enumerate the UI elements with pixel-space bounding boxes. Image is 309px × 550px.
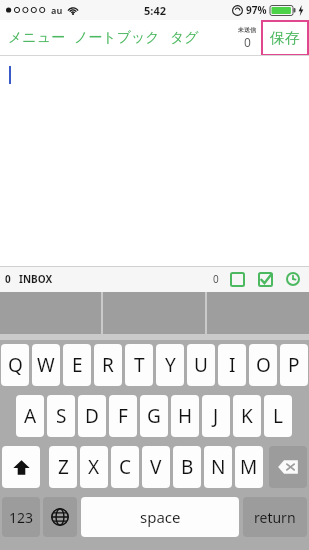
staticText: D bbox=[85, 403, 99, 429]
staticText: H bbox=[178, 403, 193, 429]
staticText: M bbox=[240, 454, 258, 480]
staticText: 0 bbox=[244, 34, 251, 50]
staticText: B bbox=[181, 454, 194, 480]
staticText: space bbox=[140, 507, 181, 527]
button[interactable]: メニュー bbox=[0, 20, 69, 56]
button[interactable]: M bbox=[235, 446, 263, 488]
staticText: I bbox=[229, 352, 236, 378]
staticText: S bbox=[56, 403, 67, 429]
button[interactable]: 未送信 bbox=[235, 26, 259, 50]
button[interactable]: L bbox=[264, 395, 292, 437]
button[interactable]: A bbox=[16, 395, 44, 437]
button[interactable]: K bbox=[233, 395, 261, 437]
staticText: W bbox=[37, 352, 55, 378]
button[interactable]: space bbox=[81, 497, 239, 537]
button[interactable]: J bbox=[202, 395, 230, 437]
button[interactable]: X bbox=[80, 446, 108, 488]
button[interactable]: S bbox=[47, 395, 75, 437]
button[interactable]: I bbox=[218, 344, 246, 386]
button[interactable]: H bbox=[171, 395, 199, 437]
staticText: 5:42 bbox=[144, 3, 166, 18]
button[interactable]: ノートブック bbox=[69, 20, 165, 56]
staticText: R bbox=[102, 352, 114, 378]
staticText: タグ bbox=[170, 29, 199, 47]
staticText: U bbox=[194, 352, 208, 378]
staticText: 未送信 bbox=[238, 26, 256, 34]
staticText: C bbox=[119, 454, 132, 480]
button[interactable]: E bbox=[63, 344, 91, 386]
staticText: V bbox=[150, 454, 162, 480]
staticText: J bbox=[213, 403, 219, 429]
button[interactable]: D bbox=[78, 395, 106, 437]
button[interactable]: N bbox=[204, 446, 232, 488]
staticText: return bbox=[254, 508, 296, 527]
button[interactable]: return bbox=[243, 497, 307, 537]
button[interactable]: W bbox=[32, 344, 60, 386]
staticText: ノートブック bbox=[74, 29, 160, 47]
button[interactable]: G bbox=[140, 395, 168, 437]
staticText: au bbox=[51, 4, 63, 16]
staticText: Q bbox=[8, 352, 23, 378]
staticText: T bbox=[134, 352, 145, 378]
staticText: 0 bbox=[213, 272, 219, 286]
button[interactable]: V bbox=[142, 446, 170, 488]
button[interactable]: F bbox=[109, 395, 137, 437]
staticText: N bbox=[211, 454, 226, 480]
staticText: 97% bbox=[246, 3, 267, 17]
staticText: 保存 bbox=[270, 29, 300, 48]
button[interactable]: U bbox=[187, 344, 215, 386]
button[interactable]: R bbox=[94, 344, 122, 386]
button[interactable]: 保存 bbox=[261, 20, 309, 56]
staticText: G bbox=[147, 403, 161, 429]
button[interactable]: Backspace bbox=[269, 446, 307, 488]
staticText: Z bbox=[58, 454, 69, 480]
button[interactable]: 123 bbox=[2, 497, 40, 537]
button[interactable]: B bbox=[173, 446, 201, 488]
button[interactable]: T bbox=[125, 344, 153, 386]
button[interactable]: タグ bbox=[165, 20, 204, 56]
staticText: F bbox=[118, 403, 128, 429]
button[interactable]: P bbox=[280, 344, 308, 386]
button[interactable]: Y bbox=[156, 344, 184, 386]
staticText: K bbox=[241, 403, 253, 429]
button[interactable]: Shift bbox=[2, 446, 40, 488]
button[interactable]: Change keyboard language bbox=[43, 497, 77, 537]
button[interactable]: C bbox=[111, 446, 139, 488]
staticText: O bbox=[256, 352, 271, 378]
button[interactable]: O bbox=[249, 344, 277, 386]
staticText: 123 bbox=[9, 508, 34, 527]
button[interactable]: Checkbox bbox=[226, 268, 248, 290]
staticText: A bbox=[24, 403, 37, 429]
button[interactable]: Reminders bbox=[282, 268, 304, 290]
button[interactable]: Z bbox=[49, 446, 77, 488]
staticText: X bbox=[88, 454, 100, 480]
staticText: 0 bbox=[5, 272, 11, 286]
button[interactable]: INBOX bbox=[19, 272, 53, 286]
staticText: P bbox=[288, 352, 300, 378]
button[interactable]: Checked task bbox=[254, 268, 276, 290]
staticText: E bbox=[72, 352, 83, 378]
staticText: メニュー bbox=[8, 29, 65, 47]
staticText: INBOX bbox=[19, 272, 53, 286]
button[interactable]: Q bbox=[1, 344, 29, 386]
staticText: Y bbox=[165, 352, 176, 378]
staticText: L bbox=[273, 403, 283, 429]
